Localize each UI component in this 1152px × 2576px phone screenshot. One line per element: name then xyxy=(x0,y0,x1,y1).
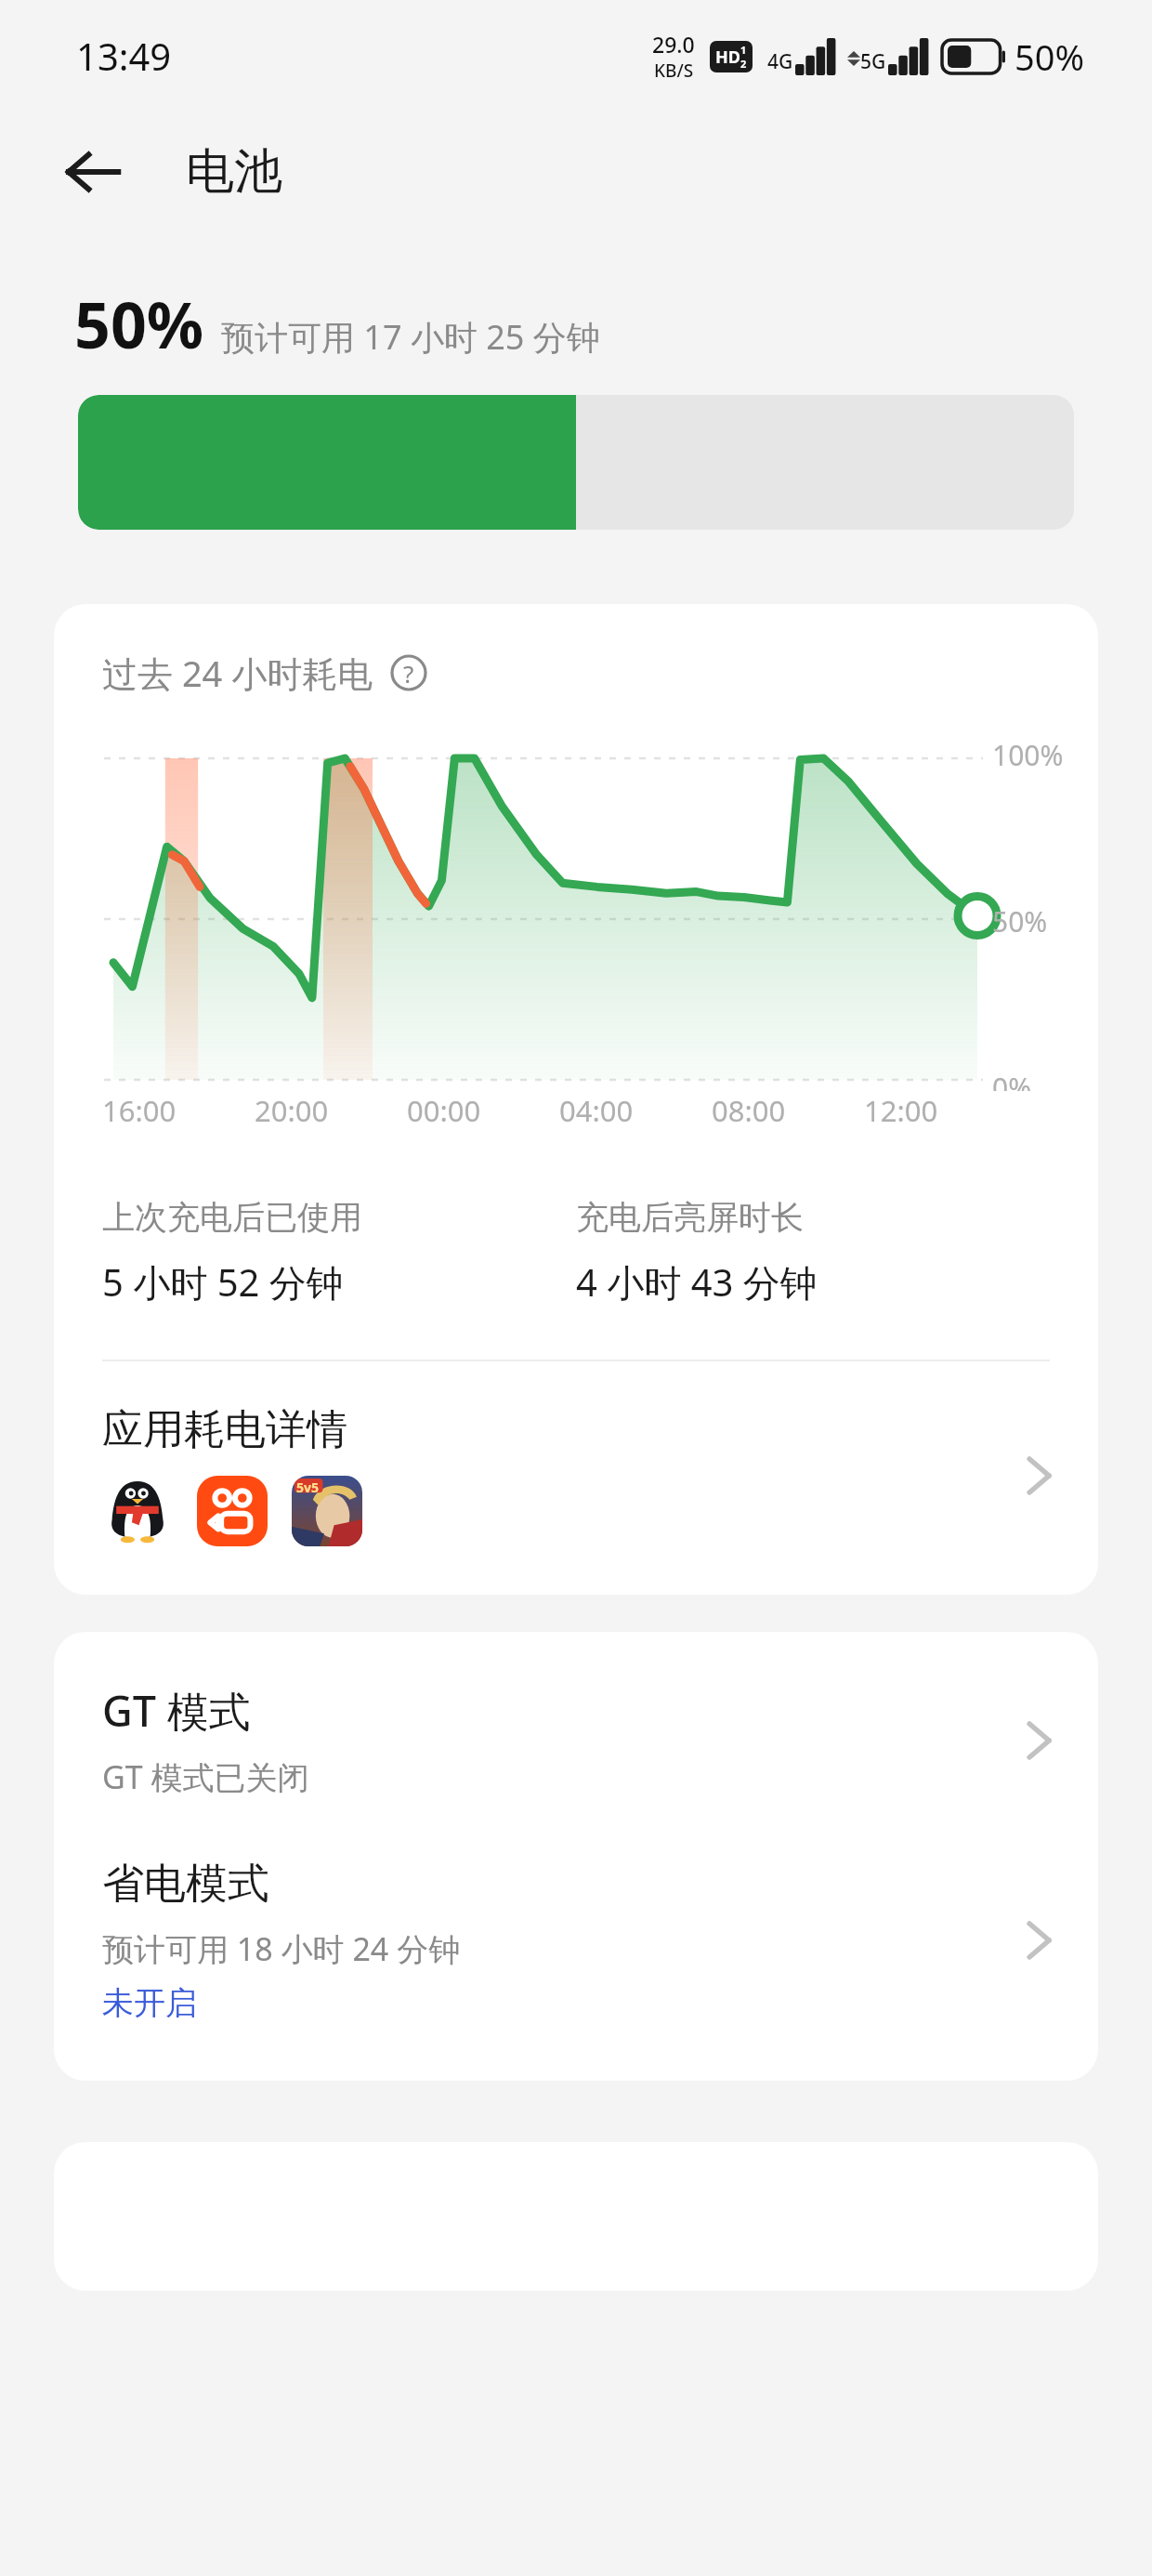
staticText: 未开启 xyxy=(102,1983,197,2023)
staticText: 5G xyxy=(860,48,886,75)
staticText: 04:00 xyxy=(559,1091,671,1130)
staticText: 预计可用 18 小时 24 分钟 xyxy=(102,1927,461,1970)
staticText: ? xyxy=(403,657,414,690)
staticText: 13:49 xyxy=(76,31,172,81)
button[interactable]: GT 模式 xyxy=(54,1632,1098,1832)
staticText: 5v5 xyxy=(296,1479,320,1496)
staticText: 50% xyxy=(992,902,1048,940)
staticText: 充电后亮屏时长 xyxy=(576,1197,804,1238)
staticText: 5 小时 52 分钟 xyxy=(102,1256,344,1308)
staticText: GT 模式已关闭 xyxy=(102,1755,309,1798)
staticText: 4G xyxy=(767,48,793,75)
staticText: 50% xyxy=(74,281,204,367)
staticText: 4 小时 43 分钟 xyxy=(576,1256,818,1308)
staticText: 预计可用 17 小时 25 分钟 xyxy=(221,314,600,360)
staticText: 省电模式 xyxy=(102,1858,269,1911)
button[interactable]: 应用耗电详情 xyxy=(54,1361,1098,1554)
button[interactable]: Back xyxy=(48,127,137,217)
staticText: 100% xyxy=(992,736,1064,774)
staticText: 应用耗电详情 xyxy=(102,1404,347,1455)
staticText: 1 xyxy=(740,43,747,57)
staticText: 29.0 xyxy=(652,30,695,59)
staticText: 上次充电后已使用 xyxy=(102,1197,362,1238)
staticText: GT 模式 xyxy=(102,1682,251,1739)
staticText: 电池 xyxy=(186,141,282,203)
staticText: 20:00 xyxy=(255,1091,366,1130)
staticText: 08:00 xyxy=(712,1091,823,1130)
staticText: 50% xyxy=(1015,33,1085,81)
button[interactable]: 省电模式 xyxy=(54,1832,1098,2081)
staticText: 16:00 xyxy=(102,1091,214,1130)
staticText: 00:00 xyxy=(407,1091,518,1130)
staticText: 2 xyxy=(740,57,747,71)
staticText: HD xyxy=(715,46,740,69)
staticText: KB/S xyxy=(654,59,694,83)
button[interactable]: Help xyxy=(388,652,429,693)
staticText: 过去 24 小时耗电 xyxy=(102,649,373,697)
staticText: 0% xyxy=(992,1069,1032,1091)
staticText: 12:00 xyxy=(864,1091,975,1130)
